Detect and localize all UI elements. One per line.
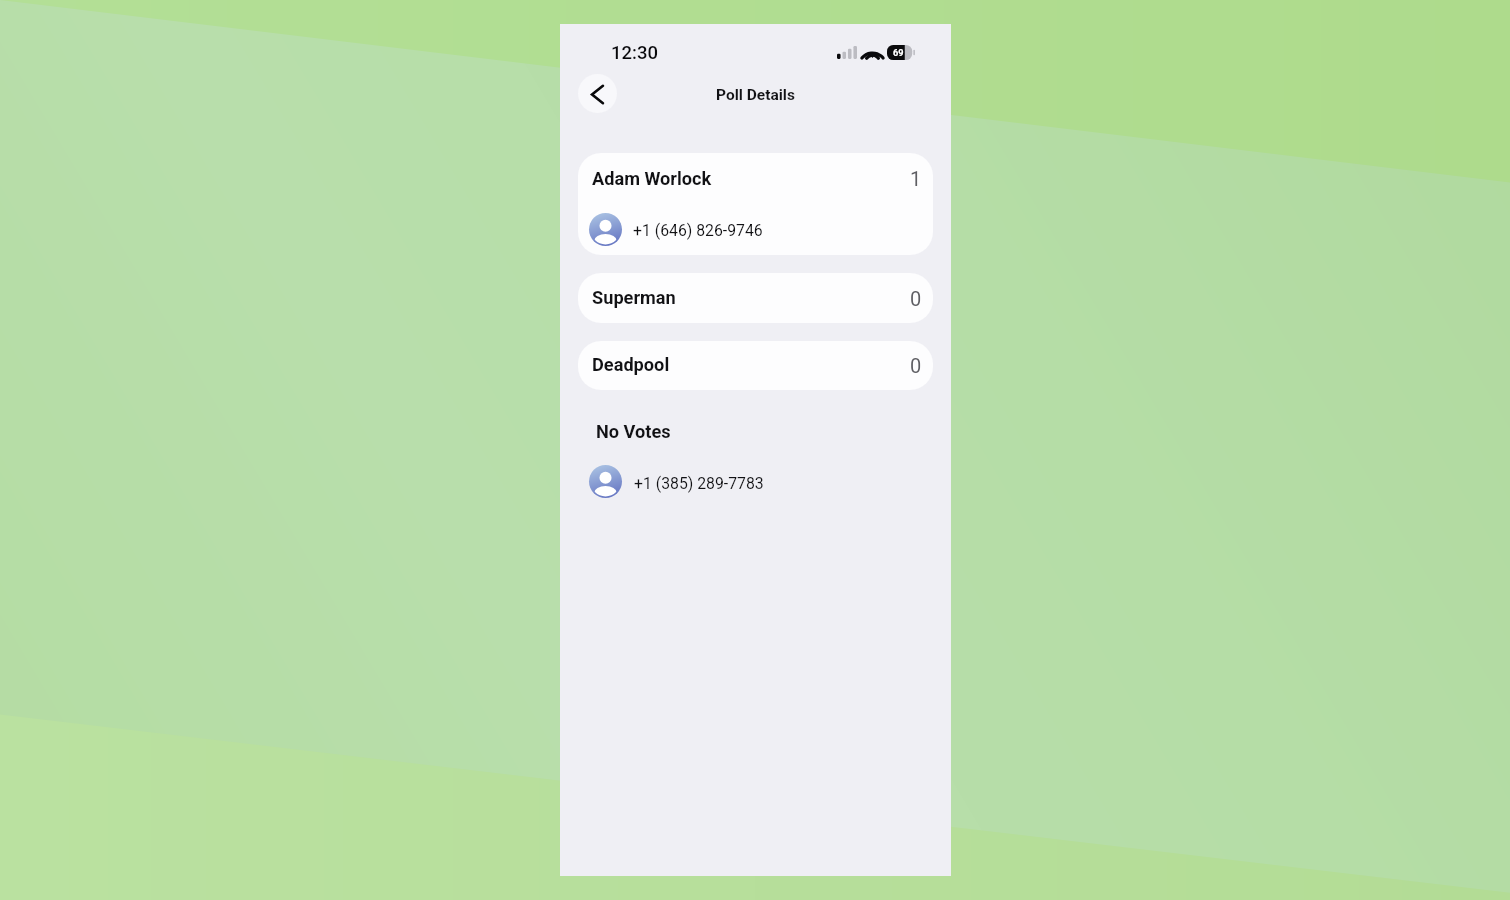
staticText: 12:30 [611,42,658,64]
staticText: Superman [592,287,676,308]
button[interactable]: Deadpool [578,341,933,390]
button[interactable]: Back [578,74,617,113]
staticText: +1 (646) 826-9746 [633,221,763,240]
button[interactable]: +1 (385) 289-7783 [589,464,811,498]
staticText: Adam Worlock [592,168,712,189]
staticText: No Votes [596,421,671,442]
staticText: 0 [910,287,922,310]
staticText: Poll Details [716,86,795,104]
staticText: +1 (385) 289-7783 [634,474,764,493]
button[interactable]: Superman [578,273,933,323]
staticText: 0 [910,354,922,377]
button[interactable]: Adam Worlock [578,153,933,255]
staticText: 69 [893,47,904,58]
staticText: Deadpool [592,354,670,375]
staticText: 1 [910,167,922,190]
